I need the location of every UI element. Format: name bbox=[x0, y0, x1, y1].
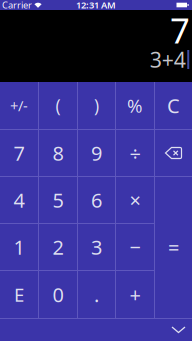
staticText: 4 bbox=[13, 187, 24, 213]
staticText: 3+4 bbox=[150, 45, 186, 74]
button[interactable]: 7 bbox=[0, 130, 38, 176]
button[interactable]: ÷ bbox=[116, 130, 154, 176]
button[interactable]: 9 bbox=[78, 130, 115, 176]
staticText: 2 bbox=[52, 234, 63, 260]
staticText: . bbox=[94, 281, 99, 308]
staticText: 12:31 AM bbox=[76, 0, 116, 11]
staticText: 7 bbox=[170, 7, 190, 53]
button[interactable]: − bbox=[116, 224, 154, 270]
button[interactable]: 1 bbox=[0, 224, 38, 270]
button[interactable]: 5 bbox=[39, 177, 77, 223]
staticText: − bbox=[129, 234, 140, 260]
button[interactable]: + bbox=[116, 271, 154, 318]
staticText: ÷ bbox=[129, 140, 140, 166]
button[interactable]: 4 bbox=[0, 177, 38, 223]
button[interactable]: × bbox=[116, 177, 154, 223]
button[interactable]: Hide keypad bbox=[163, 319, 192, 341]
button[interactable]: C bbox=[155, 82, 192, 129]
staticText: 9 bbox=[91, 140, 102, 166]
staticText: + bbox=[129, 281, 140, 308]
staticText: 7 bbox=[13, 140, 24, 166]
button[interactable]: 2 bbox=[39, 224, 77, 270]
button[interactable]: E bbox=[0, 271, 38, 318]
staticText: C bbox=[167, 92, 180, 119]
staticText: 5 bbox=[52, 187, 63, 213]
button[interactable]: 6 bbox=[78, 177, 115, 223]
staticText: 3 bbox=[91, 234, 102, 260]
staticText: +/- bbox=[10, 96, 28, 115]
staticText: E bbox=[14, 282, 24, 307]
button[interactable]: ( bbox=[39, 82, 77, 129]
button[interactable]: % bbox=[116, 82, 154, 129]
staticText: % bbox=[127, 93, 143, 118]
button[interactable]: 0 bbox=[39, 271, 77, 318]
staticText: 8 bbox=[52, 140, 63, 166]
button[interactable]: . bbox=[78, 271, 115, 318]
staticText: 6 bbox=[91, 187, 102, 213]
staticText: × bbox=[129, 187, 140, 213]
button[interactable]: ) bbox=[78, 82, 115, 129]
button[interactable]: 8 bbox=[39, 130, 77, 176]
button[interactable]: +/- bbox=[0, 82, 38, 129]
button[interactable]: = bbox=[155, 177, 192, 318]
staticText: ) bbox=[94, 94, 99, 117]
button[interactable]: 3 bbox=[78, 224, 115, 270]
staticText: 1 bbox=[13, 234, 24, 260]
staticText: Carrier bbox=[2, 0, 32, 11]
staticText: = bbox=[168, 234, 179, 261]
staticText: 0 bbox=[52, 281, 63, 308]
button[interactable]: Delete bbox=[155, 130, 192, 176]
staticText: ( bbox=[55, 94, 60, 117]
